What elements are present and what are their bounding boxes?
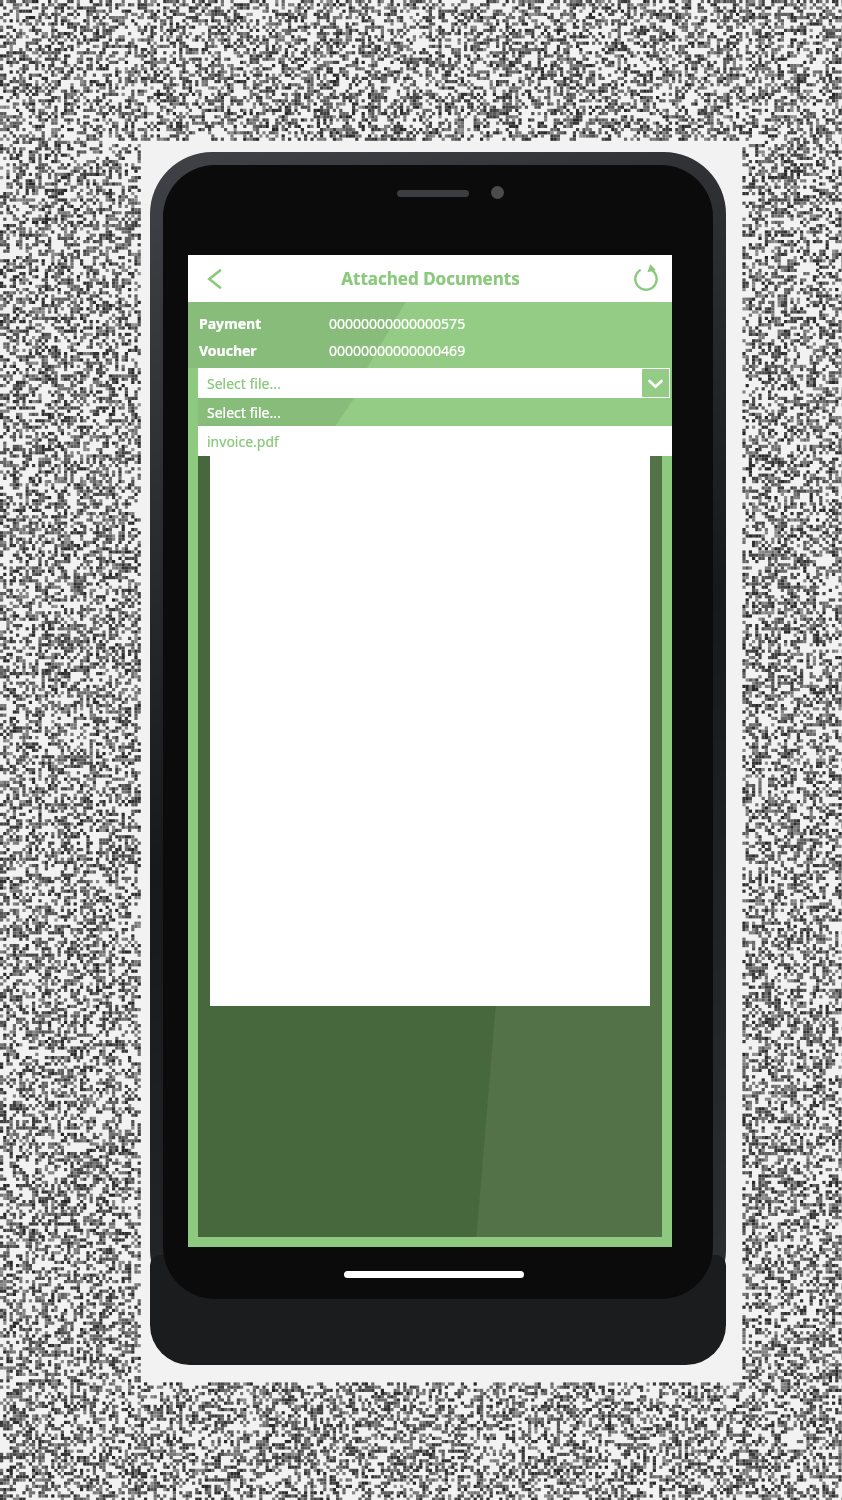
button[interactable]: Back xyxy=(188,255,242,302)
staticText: 00000000000000575 xyxy=(329,314,466,333)
button[interactable]: invoice.pdf xyxy=(198,426,672,456)
staticText: Payment xyxy=(199,314,329,333)
staticText: Select file... xyxy=(207,374,281,393)
staticText: invoice.pdf xyxy=(207,432,279,451)
staticText: Voucher xyxy=(199,341,329,360)
button[interactable]: Select file... xyxy=(198,398,672,426)
staticText: Attached Documents xyxy=(341,267,520,290)
button[interactable]: Refresh xyxy=(620,255,672,302)
staticText: Select file... xyxy=(207,403,281,422)
staticText: 00000000000000469 xyxy=(329,341,466,360)
button[interactable]: Select file... xyxy=(198,368,670,398)
button[interactable]: Open dropdown xyxy=(642,369,669,397)
